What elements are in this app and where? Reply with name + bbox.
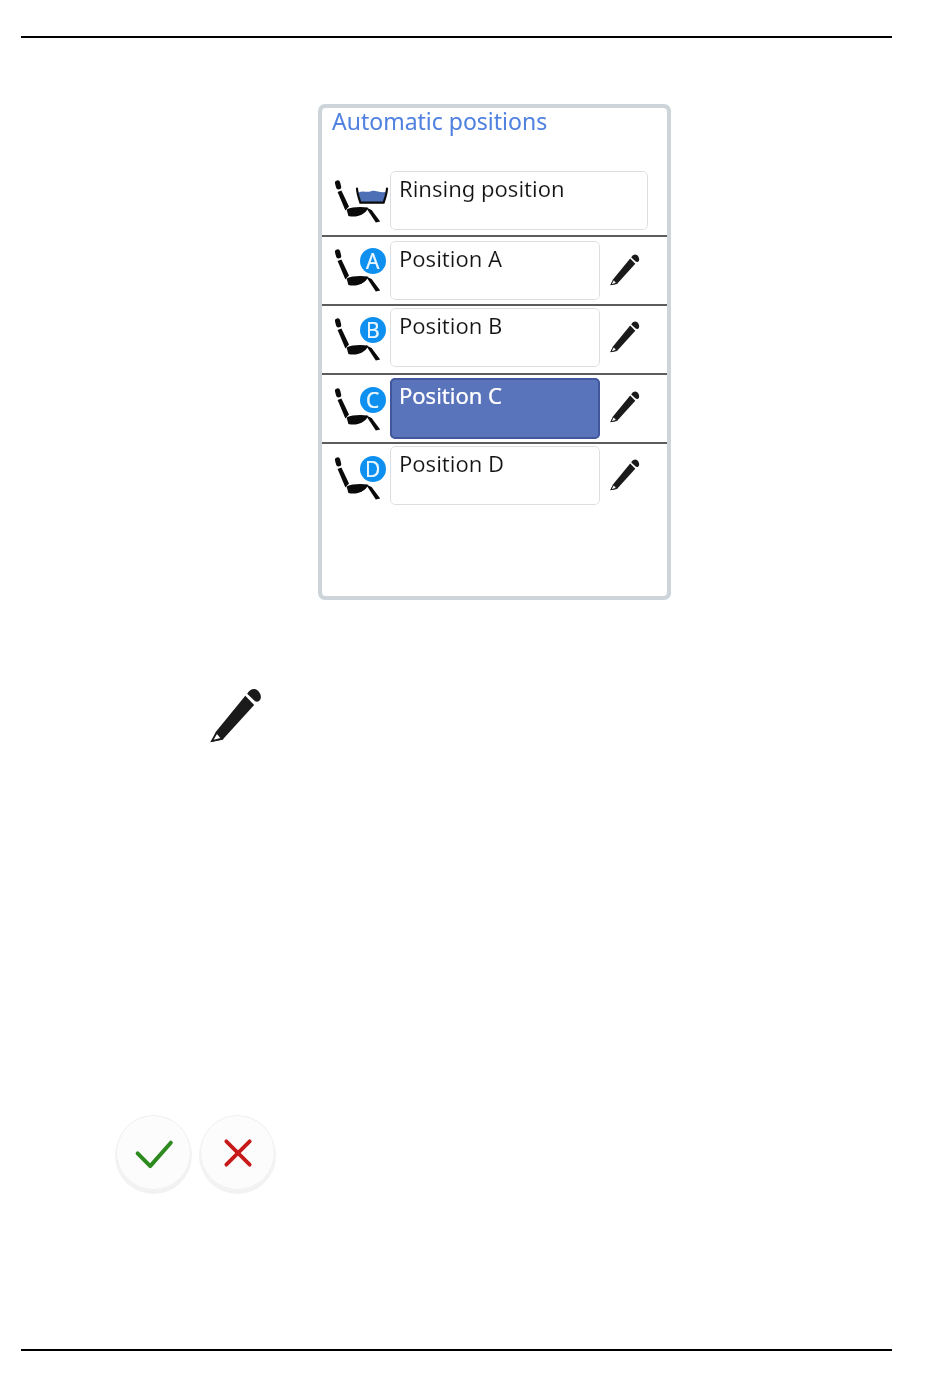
button[interactable]: Edit [207,688,264,745]
button[interactable]: Edit Position D [608,459,641,492]
staticText: Position C [399,380,502,410]
button[interactable]: Position D [330,454,386,502]
staticText: C [366,387,380,412]
button[interactable]: Position B [330,315,386,363]
button[interactable]: Rinsing position [390,171,648,230]
button[interactable]: Edit Position C [608,391,641,424]
staticText: Position A [399,243,503,273]
staticText: Position B [399,310,503,340]
button[interactable]: Edit Position B [608,321,641,354]
staticText: Automatic positions [332,105,548,136]
button[interactable]: Position C [330,385,386,433]
staticText: Rinsing position [399,173,565,203]
button[interactable]: Position C [390,378,600,439]
button[interactable]: Position A [330,246,386,294]
button[interactable]: Cancel [200,1115,275,1190]
staticText: A [366,248,380,273]
staticText: Position D [399,448,505,478]
button[interactable]: Position D [390,446,600,505]
button[interactable]: Edit Position A [608,254,641,287]
staticText: B [366,317,380,342]
staticText: D [365,456,381,481]
button[interactable]: Position A [390,241,600,300]
button[interactable]: Position B [390,308,600,367]
button[interactable]: Confirm [116,1115,191,1190]
button[interactable]: Rinsing position [330,177,386,225]
